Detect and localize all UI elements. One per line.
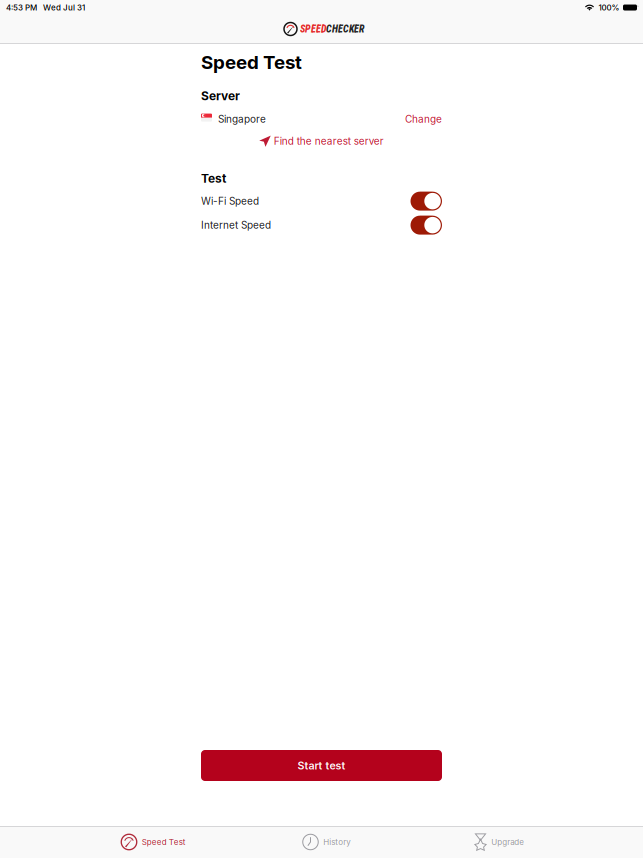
- button[interactable]: Find the nearest server: [201, 133, 442, 149]
- staticText: Change: [405, 113, 442, 125]
- staticText: 100%: [598, 3, 619, 12]
- staticText: Test: [201, 171, 226, 186]
- staticText: Start test: [297, 759, 345, 772]
- button[interactable]: Start test: [201, 750, 442, 781]
- staticText: Internet Speed: [201, 219, 271, 231]
- staticText: Find the nearest server: [274, 135, 384, 147]
- staticText: Singapore: [218, 113, 266, 125]
- button[interactable]: Wi-Fi Speed: [410, 192, 442, 211]
- button[interactable]: Change: [405, 111, 442, 127]
- staticText: CHECKER: [326, 23, 364, 35]
- button[interactable]: Speed Test: [66, 826, 240, 858]
- staticText: Speed Test: [142, 837, 186, 847]
- button[interactable]: Upgrade: [412, 826, 586, 858]
- staticText: SPEED: [300, 23, 326, 35]
- staticText: 4:53 PM: [6, 3, 37, 12]
- staticText: Wi-Fi Speed: [201, 195, 259, 207]
- staticText: Upgrade: [491, 837, 524, 847]
- staticText: Speed Test: [201, 51, 302, 74]
- button[interactable]: History: [240, 826, 412, 858]
- button[interactable]: Internet Speed: [410, 216, 442, 235]
- staticText: History: [323, 837, 350, 847]
- staticText: Wed Jul 31: [43, 3, 85, 12]
- staticText: Server: [201, 89, 240, 103]
